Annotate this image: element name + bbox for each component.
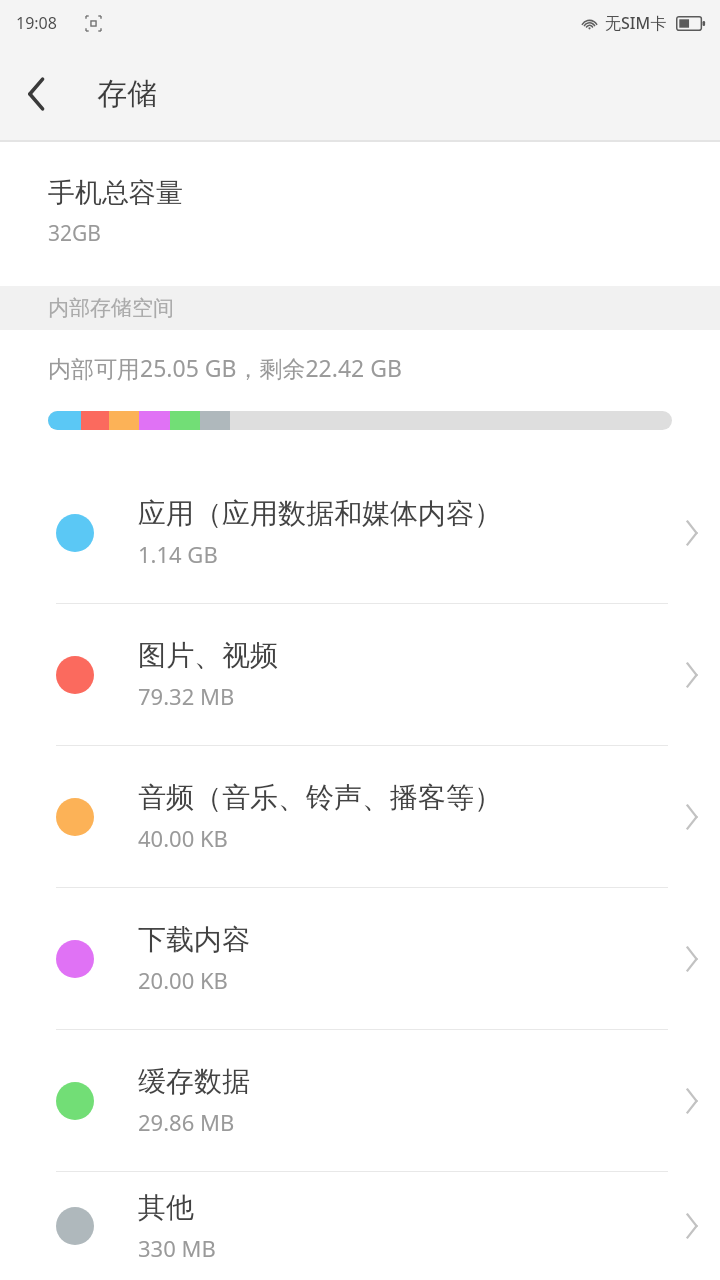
- staticText: 19:08: [16, 12, 57, 34]
- staticText: 缓存数据: [138, 1064, 250, 1099]
- staticText: 下载内容: [138, 922, 250, 957]
- staticText: 音频（音乐、铃声、播客等）: [138, 780, 502, 815]
- staticText: 内部存储空间: [48, 295, 174, 321]
- staticText: 图片、视频: [138, 638, 278, 673]
- button[interactable]: 缓存数据: [0, 1030, 720, 1171]
- staticText: 20.00 KB: [138, 965, 228, 995]
- staticText: 无SIM卡: [605, 12, 667, 34]
- button[interactable]: 下载内容: [0, 888, 720, 1029]
- button[interactable]: 音频（音乐、铃声、播客等）: [0, 746, 720, 887]
- button[interactable]: 返回: [0, 46, 72, 142]
- button[interactable]: 图片、视频: [0, 604, 720, 745]
- staticText: 330 MB: [138, 1233, 216, 1263]
- staticText: 32GB: [48, 219, 101, 248]
- staticText: 29.86 MB: [138, 1107, 235, 1137]
- staticText: 1.14 GB: [138, 539, 218, 569]
- button[interactable]: 其他: [0, 1172, 720, 1280]
- staticText: 40.00 KB: [138, 823, 228, 853]
- staticText: 内部可用25.05 GB，剩余22.42 GB: [48, 352, 402, 383]
- staticText: 手机总容量: [48, 176, 183, 210]
- staticText: 应用（应用数据和媒体内容）: [138, 496, 502, 531]
- button[interactable]: 应用（应用数据和媒体内容）: [0, 462, 720, 603]
- button[interactable]: 手机总容量: [0, 142, 720, 286]
- staticText: 存储: [97, 75, 157, 113]
- staticText: 其他: [138, 1190, 194, 1225]
- staticText: 79.32 MB: [138, 681, 235, 711]
